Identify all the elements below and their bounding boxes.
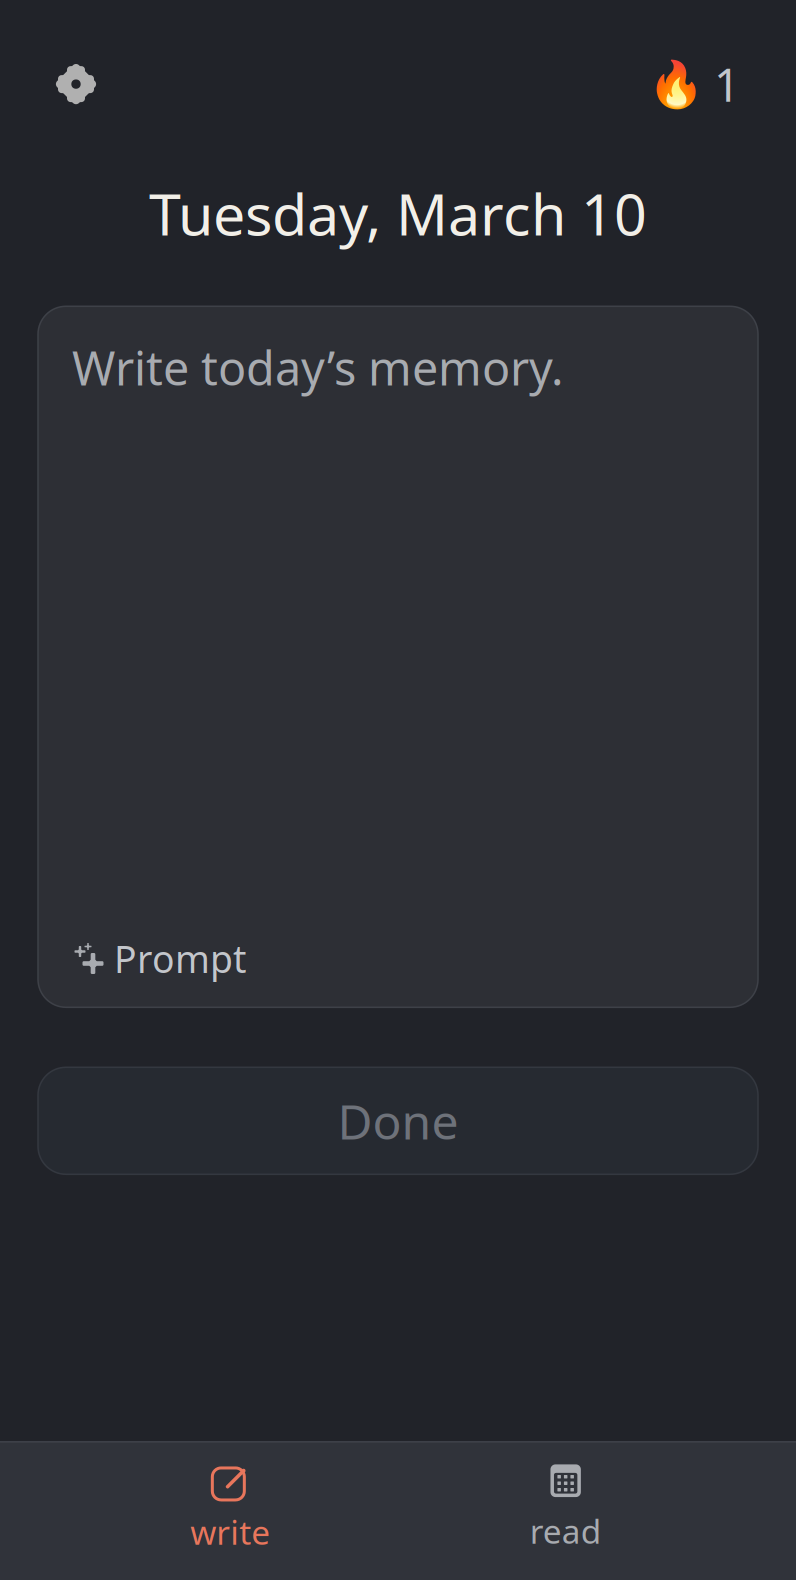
button[interactable]: read <box>461 1444 671 1579</box>
staticText: Write today’s memory. <box>72 336 564 398</box>
button[interactable]: Prompt <box>66 928 252 989</box>
button[interactable]: Settings <box>48 56 104 112</box>
staticText: read <box>530 1509 602 1553</box>
staticText: Tuesday, March 10 <box>149 174 647 252</box>
staticText: Done <box>337 1089 458 1153</box>
staticText: write <box>190 1510 270 1554</box>
staticText: 🔥 <box>648 58 704 110</box>
staticText: Prompt <box>114 934 246 983</box>
button[interactable]: write <box>125 1443 335 1580</box>
staticText: 1 <box>714 54 740 114</box>
button[interactable]: Done <box>38 1067 758 1174</box>
button[interactable]: Streak: 1 day <box>640 46 748 122</box>
